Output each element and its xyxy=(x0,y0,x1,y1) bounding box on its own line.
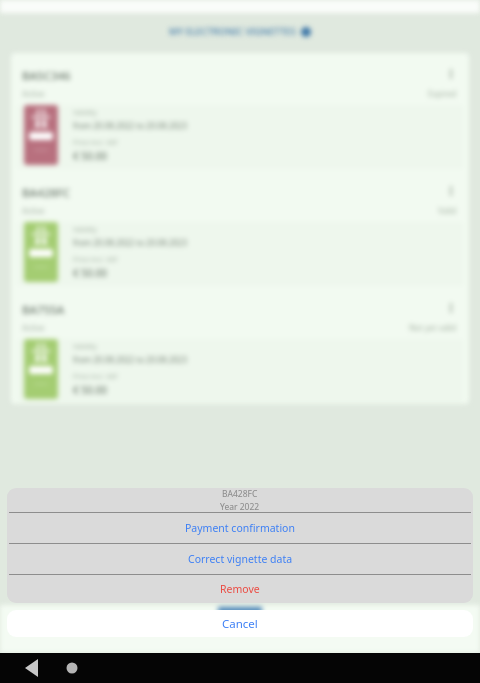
other: More options xyxy=(445,185,457,197)
staticText: € 50.00 xyxy=(73,149,107,163)
staticText: Not yet valid xyxy=(409,322,457,333)
staticText: Valid xyxy=(438,205,457,216)
button[interactable]: Payment confirmation xyxy=(7,513,473,543)
staticText: Cancel xyxy=(222,616,258,632)
button[interactable]: BA755A xyxy=(17,287,463,404)
staticText: Remove xyxy=(220,582,260,596)
staticText: Active xyxy=(22,88,45,99)
staticText: Validity xyxy=(73,342,97,352)
staticText: Year 2022 xyxy=(220,501,260,512)
button[interactable]: BA428FC xyxy=(17,170,463,287)
staticText: € 50.00 xyxy=(73,266,107,280)
staticText: Payment confirmation xyxy=(185,521,295,535)
staticText: BA755A xyxy=(22,302,65,318)
staticText: Price incl. VAT xyxy=(73,138,118,148)
staticText: BA428FC xyxy=(22,185,71,201)
button[interactable]: Buy vignette xyxy=(218,607,262,614)
staticText: from 20.08.2022 to 20.08.2023 xyxy=(73,354,187,365)
button[interactable]: Cancel xyxy=(7,610,473,637)
staticText: Validity xyxy=(73,225,97,235)
staticText: Active xyxy=(22,205,45,216)
staticText: from 20.08.2022 to 20.08.2023 xyxy=(73,237,187,248)
staticText: from 20.08.2022 to 20.08.2023 xyxy=(73,120,187,131)
staticText: MY ELECTRONIC VIGNETTES xyxy=(169,25,296,38)
staticText: Active xyxy=(22,322,45,333)
staticText: BA5C346 xyxy=(22,68,71,84)
staticText: € 50.00 xyxy=(73,383,107,397)
button[interactable]: Correct vignette data xyxy=(7,544,473,574)
button[interactable]: Remove xyxy=(7,575,473,603)
staticText: Price incl. VAT xyxy=(73,372,118,382)
staticText: Expired xyxy=(428,88,457,99)
staticText: Correct vignette data xyxy=(188,552,293,566)
staticText: Validity xyxy=(73,108,97,118)
button[interactable]: BA5C346 xyxy=(17,53,463,170)
other: More options xyxy=(445,302,457,314)
other: More options xyxy=(445,68,457,80)
staticText: Price incl. VAT xyxy=(73,255,118,265)
staticText: BA428FC xyxy=(222,488,258,500)
